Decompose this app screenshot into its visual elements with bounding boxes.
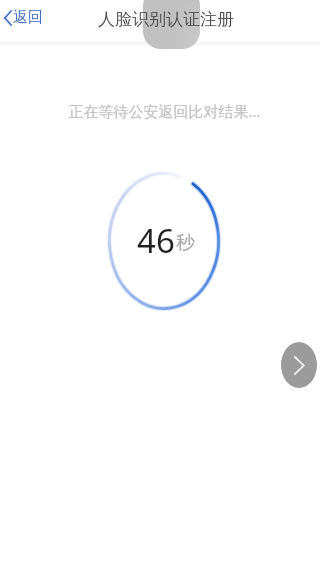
staticText: 正在等待公安返回比对结果...	[68, 101, 261, 121]
staticText: 46	[137, 218, 175, 263]
button[interactable]: Next	[281, 342, 317, 388]
button[interactable]: 返回	[2, 5, 45, 30]
staticText: 人脸识别认证注册	[98, 9, 234, 30]
staticText: 返回	[13, 8, 43, 27]
staticText: 秒	[176, 231, 195, 255]
